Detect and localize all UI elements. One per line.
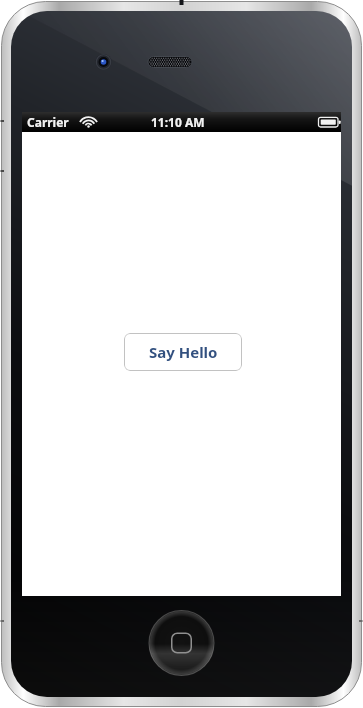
staticText: Say Hello bbox=[149, 342, 218, 362]
button[interactable]: Say Hello bbox=[124, 333, 242, 371]
staticText: Carrier bbox=[27, 114, 69, 130]
staticText: 11:10 AM bbox=[151, 114, 205, 130]
